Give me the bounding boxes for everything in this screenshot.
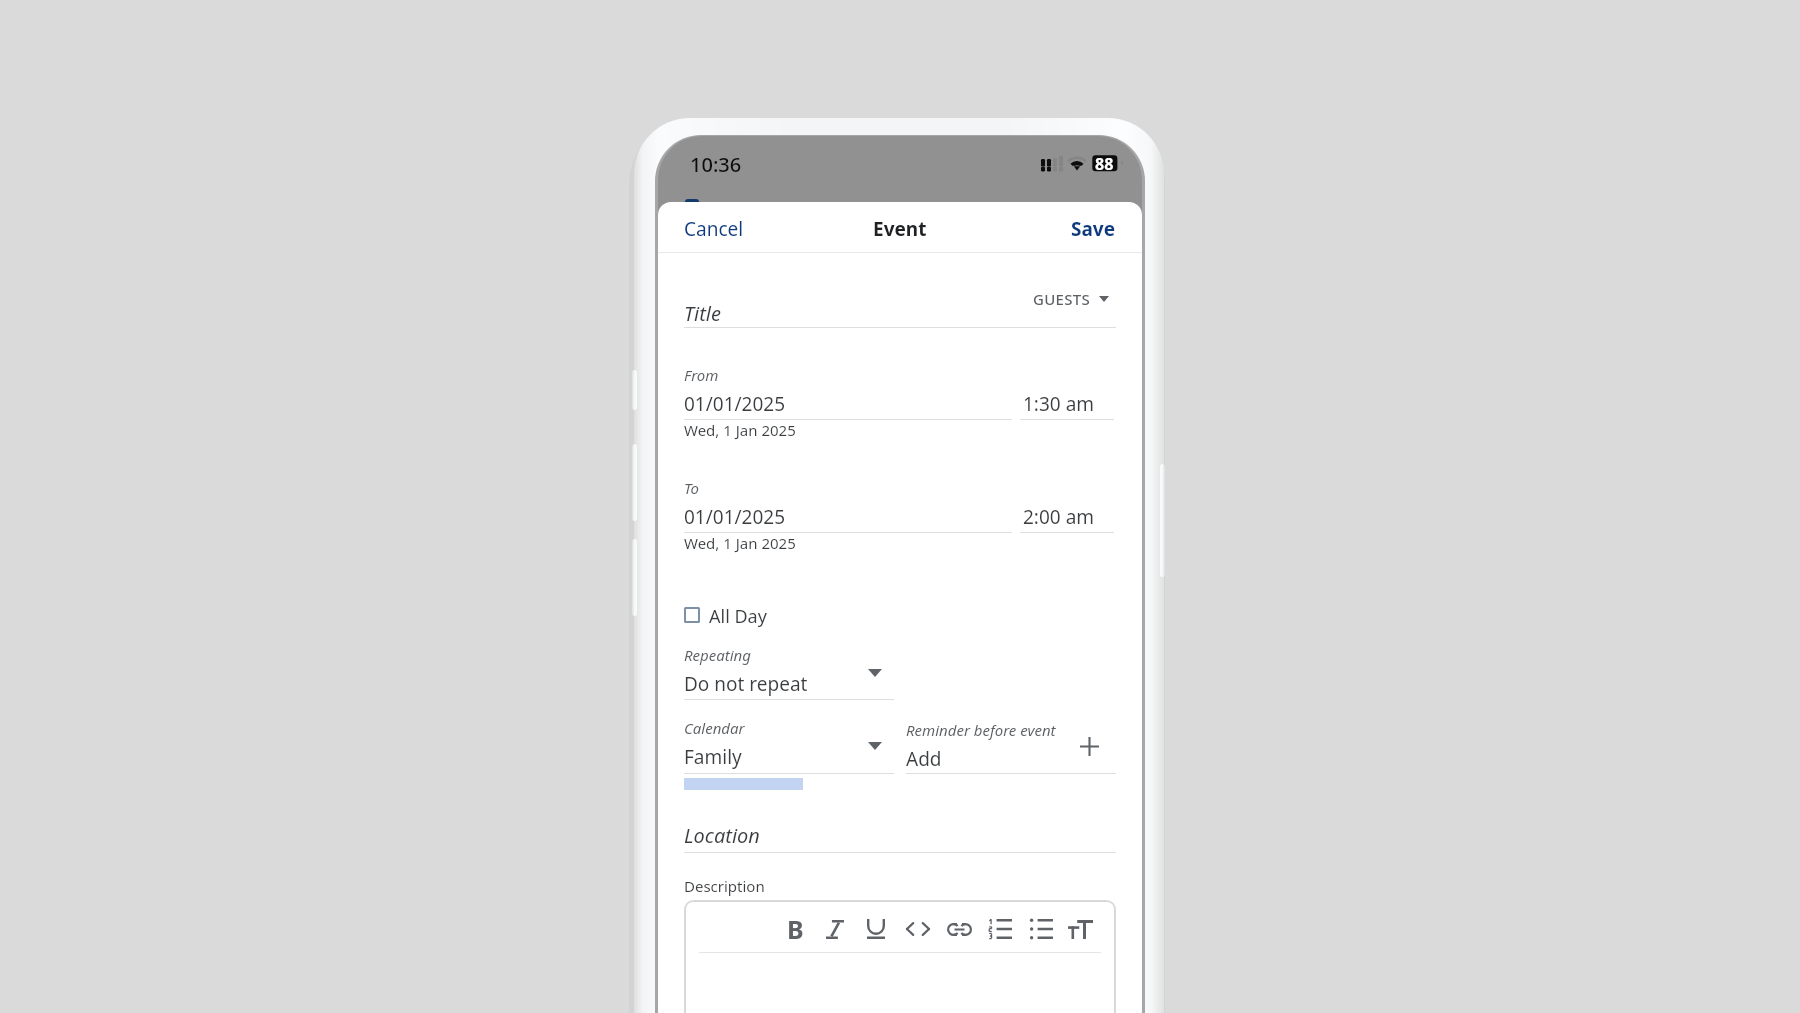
staticText: 2:00 am — [1023, 504, 1095, 530]
button[interactable]: Link — [941, 911, 977, 947]
staticText: Location — [684, 822, 760, 849]
staticText: GUESTS — [1033, 289, 1091, 309]
button[interactable]: Italic — [817, 911, 853, 947]
button[interactable]: 01/01/2025 — [684, 391, 1012, 417]
staticText: Add — [906, 746, 942, 772]
staticText: Save — [1071, 216, 1116, 242]
button[interactable]: Save — [1071, 216, 1116, 242]
button[interactable]: Code — [900, 911, 936, 947]
button[interactable]: 2:00 am — [1020, 504, 1114, 530]
button[interactable]: Text size — [1062, 911, 1098, 947]
button[interactable]: Repeating — [684, 645, 894, 701]
staticText: Reminder before event — [906, 720, 1056, 740]
staticText: Repeating — [684, 645, 751, 665]
staticText: 88 — [1095, 153, 1114, 175]
staticText: 1:30 am — [1023, 391, 1095, 417]
button[interactable]: Bold — [777, 911, 813, 947]
staticText: Description — [684, 876, 765, 896]
staticText: From — [684, 365, 719, 385]
staticText: Calendar — [684, 718, 745, 738]
button[interactable]: 01/01/2025 — [684, 504, 1012, 530]
button[interactable]: All Day — [684, 602, 794, 626]
button[interactable]: 1:30 am — [1020, 391, 1114, 417]
button[interactable]: GUESTS — [1033, 289, 1109, 309]
button[interactable]: Numbered list — [982, 911, 1018, 947]
button[interactable]: Add — [906, 746, 1116, 772]
button[interactable]: Underline — [858, 911, 894, 947]
staticText: Title — [684, 300, 721, 327]
staticText: Cancel — [684, 216, 744, 242]
button[interactable]: Calendar — [684, 718, 894, 774]
staticText: B — [787, 912, 804, 946]
button[interactable]: Cancel — [684, 216, 744, 242]
button[interactable]: Add reminder — [1073, 730, 1105, 762]
staticText: 01/01/2025 — [684, 391, 786, 417]
staticText: Wed, 1 Jan 2025 — [684, 420, 796, 440]
staticText: Do not repeat — [684, 671, 808, 697]
staticText: Event — [873, 216, 927, 242]
staticText: To — [684, 478, 699, 498]
button[interactable]: Bulleted list — [1023, 911, 1059, 947]
staticText: 01/01/2025 — [684, 504, 786, 530]
staticText: 10:36 — [690, 151, 742, 178]
staticText: Wed, 1 Jan 2025 — [684, 533, 796, 553]
staticText: Family — [684, 744, 742, 770]
staticText: All Day — [709, 604, 767, 628]
